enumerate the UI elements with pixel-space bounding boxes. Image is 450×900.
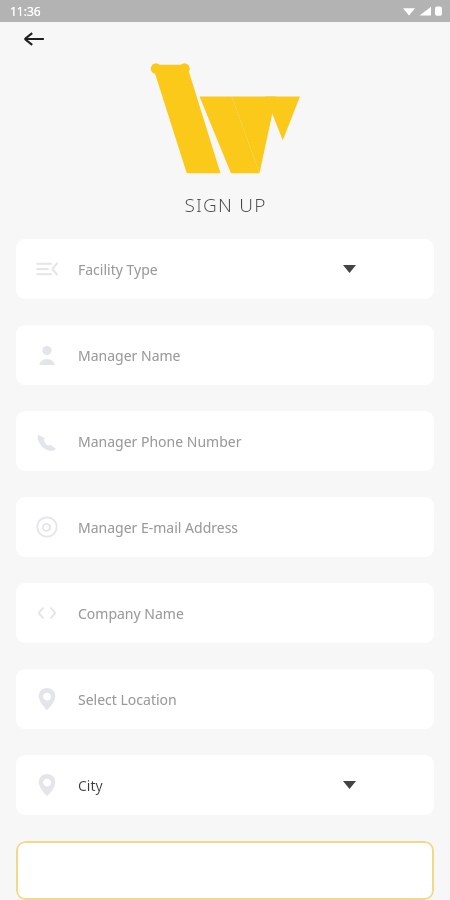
staticText: Manager Phone Number bbox=[78, 432, 416, 451]
button[interactable]: Facility Type bbox=[16, 239, 434, 299]
button[interactable]: Back bbox=[14, 22, 54, 56]
staticText: Facility Type bbox=[78, 260, 343, 279]
staticText: 11:36 bbox=[10, 3, 41, 19]
staticText: Company Name bbox=[78, 604, 416, 623]
button[interactable]: Manager Name bbox=[16, 325, 434, 385]
staticText: Manager Name bbox=[78, 346, 416, 365]
staticText: City bbox=[78, 776, 343, 795]
button[interactable]: Company Name bbox=[16, 583, 434, 643]
staticText: Select Location bbox=[78, 690, 416, 709]
button[interactable]: Manager Phone Number bbox=[16, 411, 434, 471]
button[interactable] bbox=[16, 841, 434, 900]
staticText: Manager E-mail Address bbox=[78, 518, 416, 537]
staticText: SIGN UP bbox=[184, 192, 267, 218]
button[interactable]: Manager E-mail Address bbox=[16, 497, 434, 557]
button[interactable]: City bbox=[16, 755, 434, 815]
button[interactable]: Select Location bbox=[16, 669, 434, 729]
